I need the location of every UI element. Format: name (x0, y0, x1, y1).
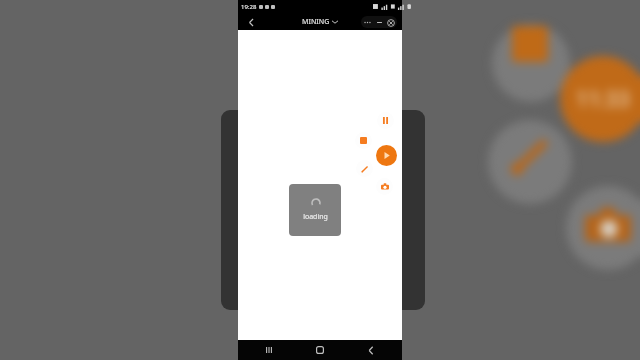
button[interactable]: Stop (355, 132, 372, 149)
button[interactable]: Home (300, 340, 340, 360)
button[interactable]: Camera (376, 178, 393, 195)
staticText: MINING (302, 17, 330, 27)
button[interactable]: Edit (356, 160, 373, 177)
staticText: 11:33 (576, 85, 630, 114)
button[interactable]: Back (351, 340, 391, 360)
staticText: loading (303, 212, 328, 222)
button[interactable]: Record (376, 145, 397, 166)
button[interactable]: Minimize (374, 17, 385, 28)
button[interactable]: Back (244, 15, 258, 29)
button[interactable]: Recents (249, 340, 289, 360)
button[interactable]: Close (385, 17, 396, 28)
button[interactable]: Pause (377, 112, 394, 129)
button[interactable]: More (362, 17, 373, 28)
staticText: 19:28 (241, 3, 257, 11)
button[interactable]: MINING (302, 17, 338, 27)
